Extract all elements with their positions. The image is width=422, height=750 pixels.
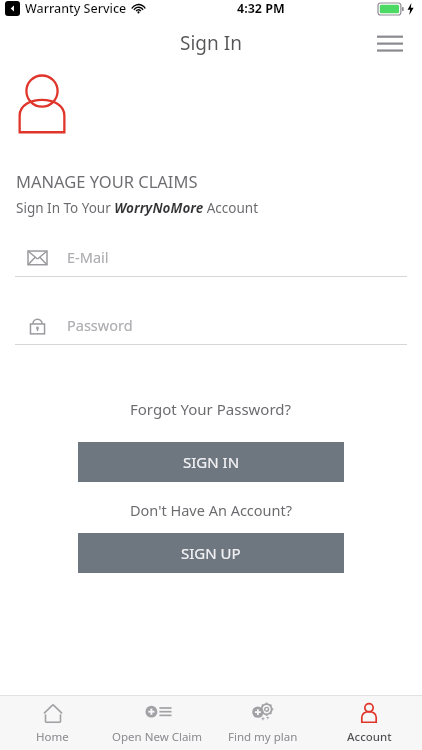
staticText: Account	[347, 729, 392, 745]
button[interactable]: Find my plan	[210, 696, 316, 750]
staticText: SIGN UP	[181, 543, 241, 563]
staticText: Forgot Your Password?	[130, 399, 292, 419]
button[interactable]: Open New Claim	[105, 696, 210, 750]
staticText: Password	[67, 315, 133, 335]
button[interactable]: Menu	[372, 25, 408, 61]
staticText: Warranty Service	[25, 0, 127, 17]
button[interactable]: Home	[0, 696, 105, 750]
button[interactable]: SIGN UP	[78, 533, 344, 573]
staticText: MANAGE YOUR CLAIMS	[16, 170, 198, 192]
staticText: Sign In To Your WorryNoMore Account	[16, 199, 259, 217]
staticText: Open New Claim	[112, 729, 203, 745]
staticText: Find my plan	[228, 729, 298, 745]
button[interactable]: Account	[316, 696, 422, 750]
staticText: SIGN IN	[183, 452, 240, 472]
staticText: Home	[36, 729, 69, 745]
button[interactable]: Password	[15, 315, 407, 345]
staticText: 4:32 PM	[237, 0, 285, 17]
button[interactable]: E-Mail	[15, 247, 407, 277]
staticText: Sign In	[180, 30, 242, 56]
button[interactable]: Forgot Your Password?	[122, 395, 300, 423]
button[interactable]: SIGN IN	[78, 442, 344, 482]
staticText: E-Mail	[67, 247, 109, 267]
staticText: Don't Have An Account?	[130, 500, 293, 520]
